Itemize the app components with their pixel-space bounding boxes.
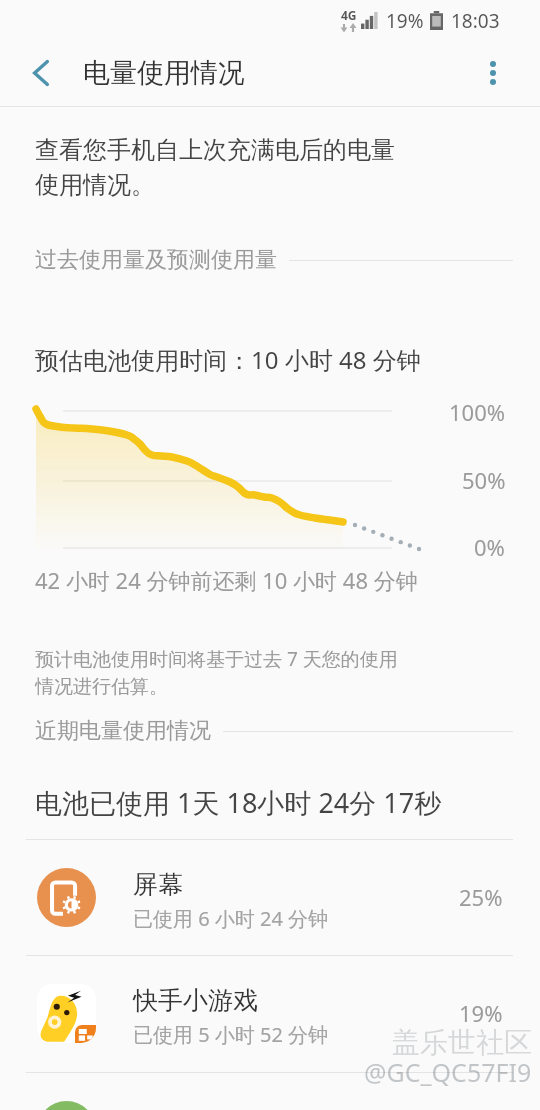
staticText: 18:03 (451, 8, 500, 34)
staticText: 电量使用情况 (83, 56, 245, 90)
staticText: 50% (462, 465, 506, 495)
staticText: 查看您手机自上次充满电后的电量 使用情况。 (35, 135, 395, 200)
staticText: 预计电池使用时间将基于过去 7 天您的使用 情况进行估算。 (35, 646, 398, 699)
staticText: 近期电量使用情况 (35, 717, 211, 745)
staticText: 已使用 6 小时 24 分钟 (133, 905, 329, 932)
button[interactable]: Back (17, 49, 65, 97)
button[interactable]: 屏幕 (0, 839, 540, 955)
staticText: 盖乐世社区 (392, 1025, 532, 1060)
staticText: 42 小时 24 分钟前还剩 10 小时 48 分钟 (35, 565, 418, 595)
staticText: 0% (474, 532, 505, 562)
staticText: 100% (449, 397, 506, 427)
staticText: 4G (341, 7, 357, 23)
staticText: 19% (386, 8, 424, 34)
button[interactable] (0, 1072, 540, 1110)
staticText: 19% (459, 998, 503, 1028)
button[interactable]: More options (469, 49, 517, 97)
staticText: 电池已使用 1天 18小时 24分 17秒 (35, 784, 442, 821)
staticText: @GC_QC57FI9 (364, 1055, 532, 1089)
staticText: 过去使用量及预测使用量 (35, 246, 277, 274)
staticText: 25% (459, 882, 503, 912)
staticText: 已使用 5 小时 52 分钟 (133, 1021, 329, 1048)
button[interactable]: 快手小游戏 (0, 955, 540, 1071)
staticText: 预估电池使用时间：10 小时 48 分钟 (35, 343, 421, 376)
staticText: 快手小游戏 (133, 985, 258, 1016)
staticText: 屏幕 (133, 869, 183, 900)
